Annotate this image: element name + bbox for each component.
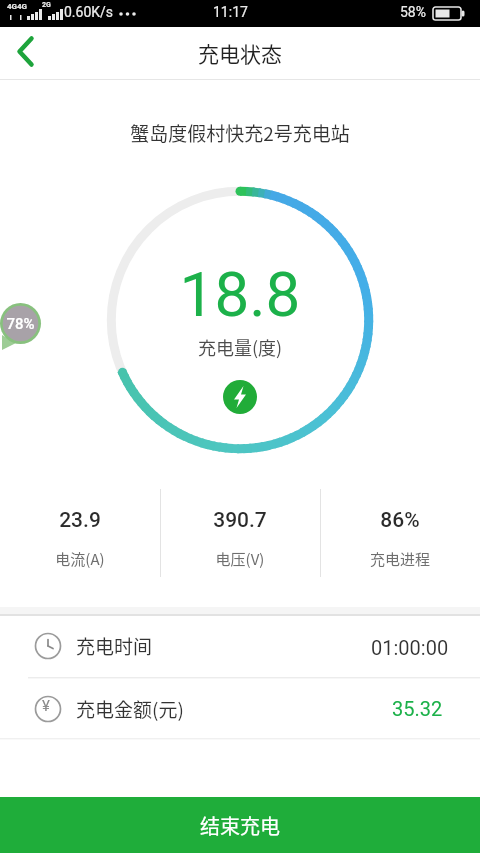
staticText: 35.32 bbox=[392, 697, 443, 720]
staticText: 充电量(度) bbox=[0, 334, 480, 360]
staticText: 2G bbox=[42, 1, 51, 9]
staticText: 390.7 bbox=[160, 508, 320, 533]
staticText: 充电金额(元) bbox=[76, 695, 184, 723]
staticText: 0.60K/s bbox=[64, 4, 114, 20]
staticText: 86% bbox=[320, 508, 480, 533]
staticText: 充电状态 bbox=[0, 38, 480, 68]
staticText: 充电进程 bbox=[320, 548, 480, 570]
button[interactable]: 充电时间 bbox=[0, 616, 480, 678]
staticText: 18.8 bbox=[0, 258, 480, 331]
staticText: 78% bbox=[0, 315, 41, 333]
staticText: 23.9 bbox=[0, 508, 160, 533]
button[interactable]: ¥ bbox=[0, 678, 480, 739]
staticText: ¥ bbox=[42, 697, 50, 715]
staticText: 58% bbox=[400, 4, 426, 20]
staticText: 结束充电 bbox=[200, 811, 280, 840]
staticText: 4G bbox=[7, 2, 18, 11]
staticText: 蟹岛度假村快充2号充电站 bbox=[0, 119, 480, 147]
staticText: 电流(A) bbox=[0, 548, 160, 570]
staticText: 01:00:00 bbox=[371, 636, 449, 659]
button[interactable]: 78% bbox=[0, 302, 44, 354]
staticText: 充电时间 bbox=[76, 632, 153, 660]
button[interactable] bbox=[0, 27, 52, 79]
staticText: 11:17 bbox=[213, 4, 248, 20]
staticText: 4G bbox=[17, 2, 28, 11]
staticText: 电压(V) bbox=[160, 548, 320, 570]
button[interactable]: 结束充电 bbox=[0, 797, 480, 853]
